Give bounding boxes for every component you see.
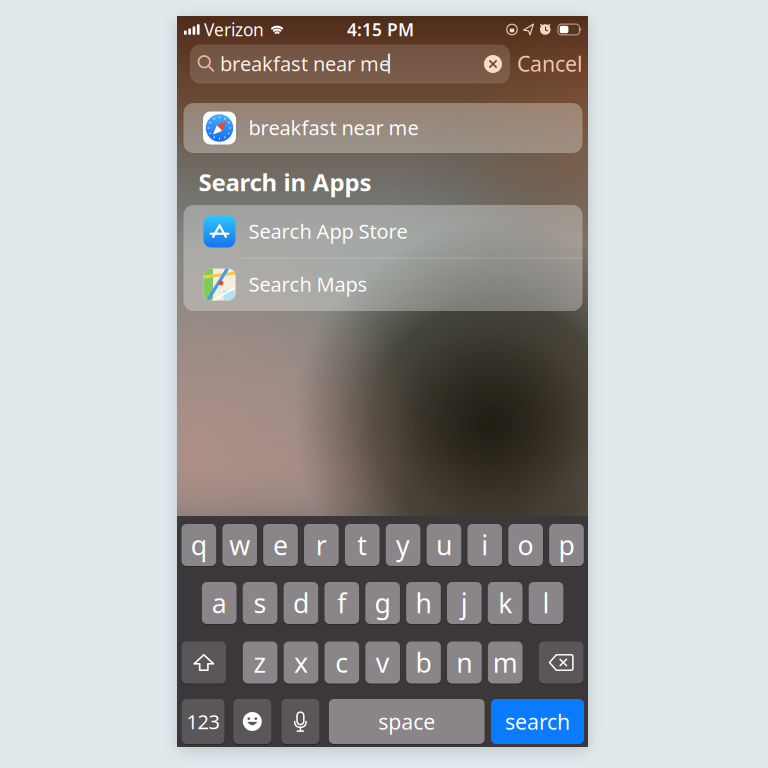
button[interactable]: z [243, 641, 277, 683]
button[interactable]: n [447, 641, 482, 683]
staticText: 4:15 PM [347, 18, 414, 41]
button[interactable]: Search Maps [183, 258, 582, 311]
button[interactable]: u [427, 524, 461, 566]
staticText: Verizon [204, 18, 264, 41]
staticText: h [415, 585, 431, 621]
button[interactable]: Cancel [517, 49, 583, 78]
button[interactable]: search [491, 699, 584, 744]
button[interactable]: v [365, 641, 400, 683]
button[interactable]: b [406, 641, 441, 683]
button[interactable]: l [529, 582, 563, 624]
staticText: 123 [187, 708, 220, 735]
staticText: z [254, 645, 267, 680]
staticText: f [337, 585, 346, 621]
staticText: i [481, 527, 488, 563]
button[interactable]: j [447, 582, 482, 624]
button[interactable]: t [345, 524, 379, 566]
staticText: w [229, 527, 250, 563]
staticText: k [498, 585, 512, 621]
staticText: x [294, 645, 308, 680]
staticText: u [436, 527, 452, 563]
button[interactable]: d [284, 582, 318, 624]
staticText: b [415, 645, 431, 680]
staticText: search [505, 707, 570, 736]
button[interactable]: Dictate [281, 699, 319, 744]
button[interactable]: s [243, 582, 277, 624]
staticText: breakfast near me [248, 114, 418, 141]
button[interactable]: 123 [182, 699, 224, 744]
button[interactable]: w [222, 524, 257, 566]
staticText: t [357, 527, 367, 563]
button[interactable]: p [549, 524, 584, 566]
staticText: a [212, 585, 227, 621]
staticText: g [375, 585, 391, 621]
button[interactable]: r [304, 524, 339, 566]
button[interactable]: space [329, 699, 485, 744]
button[interactable]: breakfast near me [190, 44, 510, 83]
button[interactable]: Emoji [233, 699, 271, 744]
button[interactable]: Delete [539, 641, 583, 683]
button[interactable]: x [284, 641, 318, 683]
staticText: s [254, 585, 267, 621]
staticText: m [493, 645, 518, 680]
staticText: Search Maps [248, 271, 367, 297]
staticText: q [191, 527, 207, 563]
button[interactable]: q [181, 524, 216, 566]
staticText: o [518, 527, 534, 563]
staticText: e [273, 527, 288, 563]
button[interactable]: k [488, 582, 522, 624]
staticText: Cancel [517, 49, 583, 78]
staticText: v [376, 645, 390, 680]
button[interactable]: h [406, 582, 441, 624]
staticText: j [461, 585, 468, 621]
button[interactable]: i [467, 524, 502, 566]
staticText: Search in Apps [198, 166, 371, 198]
button[interactable]: a [202, 582, 236, 624]
button[interactable]: f [324, 582, 359, 624]
staticText: Search App Store [248, 218, 407, 244]
button[interactable]: breakfast near me [183, 103, 582, 153]
button[interactable]: Shift [181, 641, 226, 683]
staticText: space [378, 707, 435, 736]
staticText: y [396, 527, 410, 563]
button[interactable]: g [365, 582, 400, 624]
staticText: l [542, 585, 549, 621]
staticText: n [456, 645, 472, 680]
button[interactable]: c [324, 641, 359, 683]
button[interactable]: e [263, 524, 298, 566]
button[interactable]: m [488, 641, 522, 683]
button[interactable]: Search App Store [183, 205, 582, 258]
staticText: d [293, 585, 309, 621]
staticText: r [316, 527, 327, 563]
button[interactable]: y [386, 524, 420, 566]
button[interactable]: o [508, 524, 543, 566]
staticText: c [335, 645, 348, 680]
staticText: breakfast near me [220, 50, 390, 77]
staticText: p [558, 527, 574, 563]
